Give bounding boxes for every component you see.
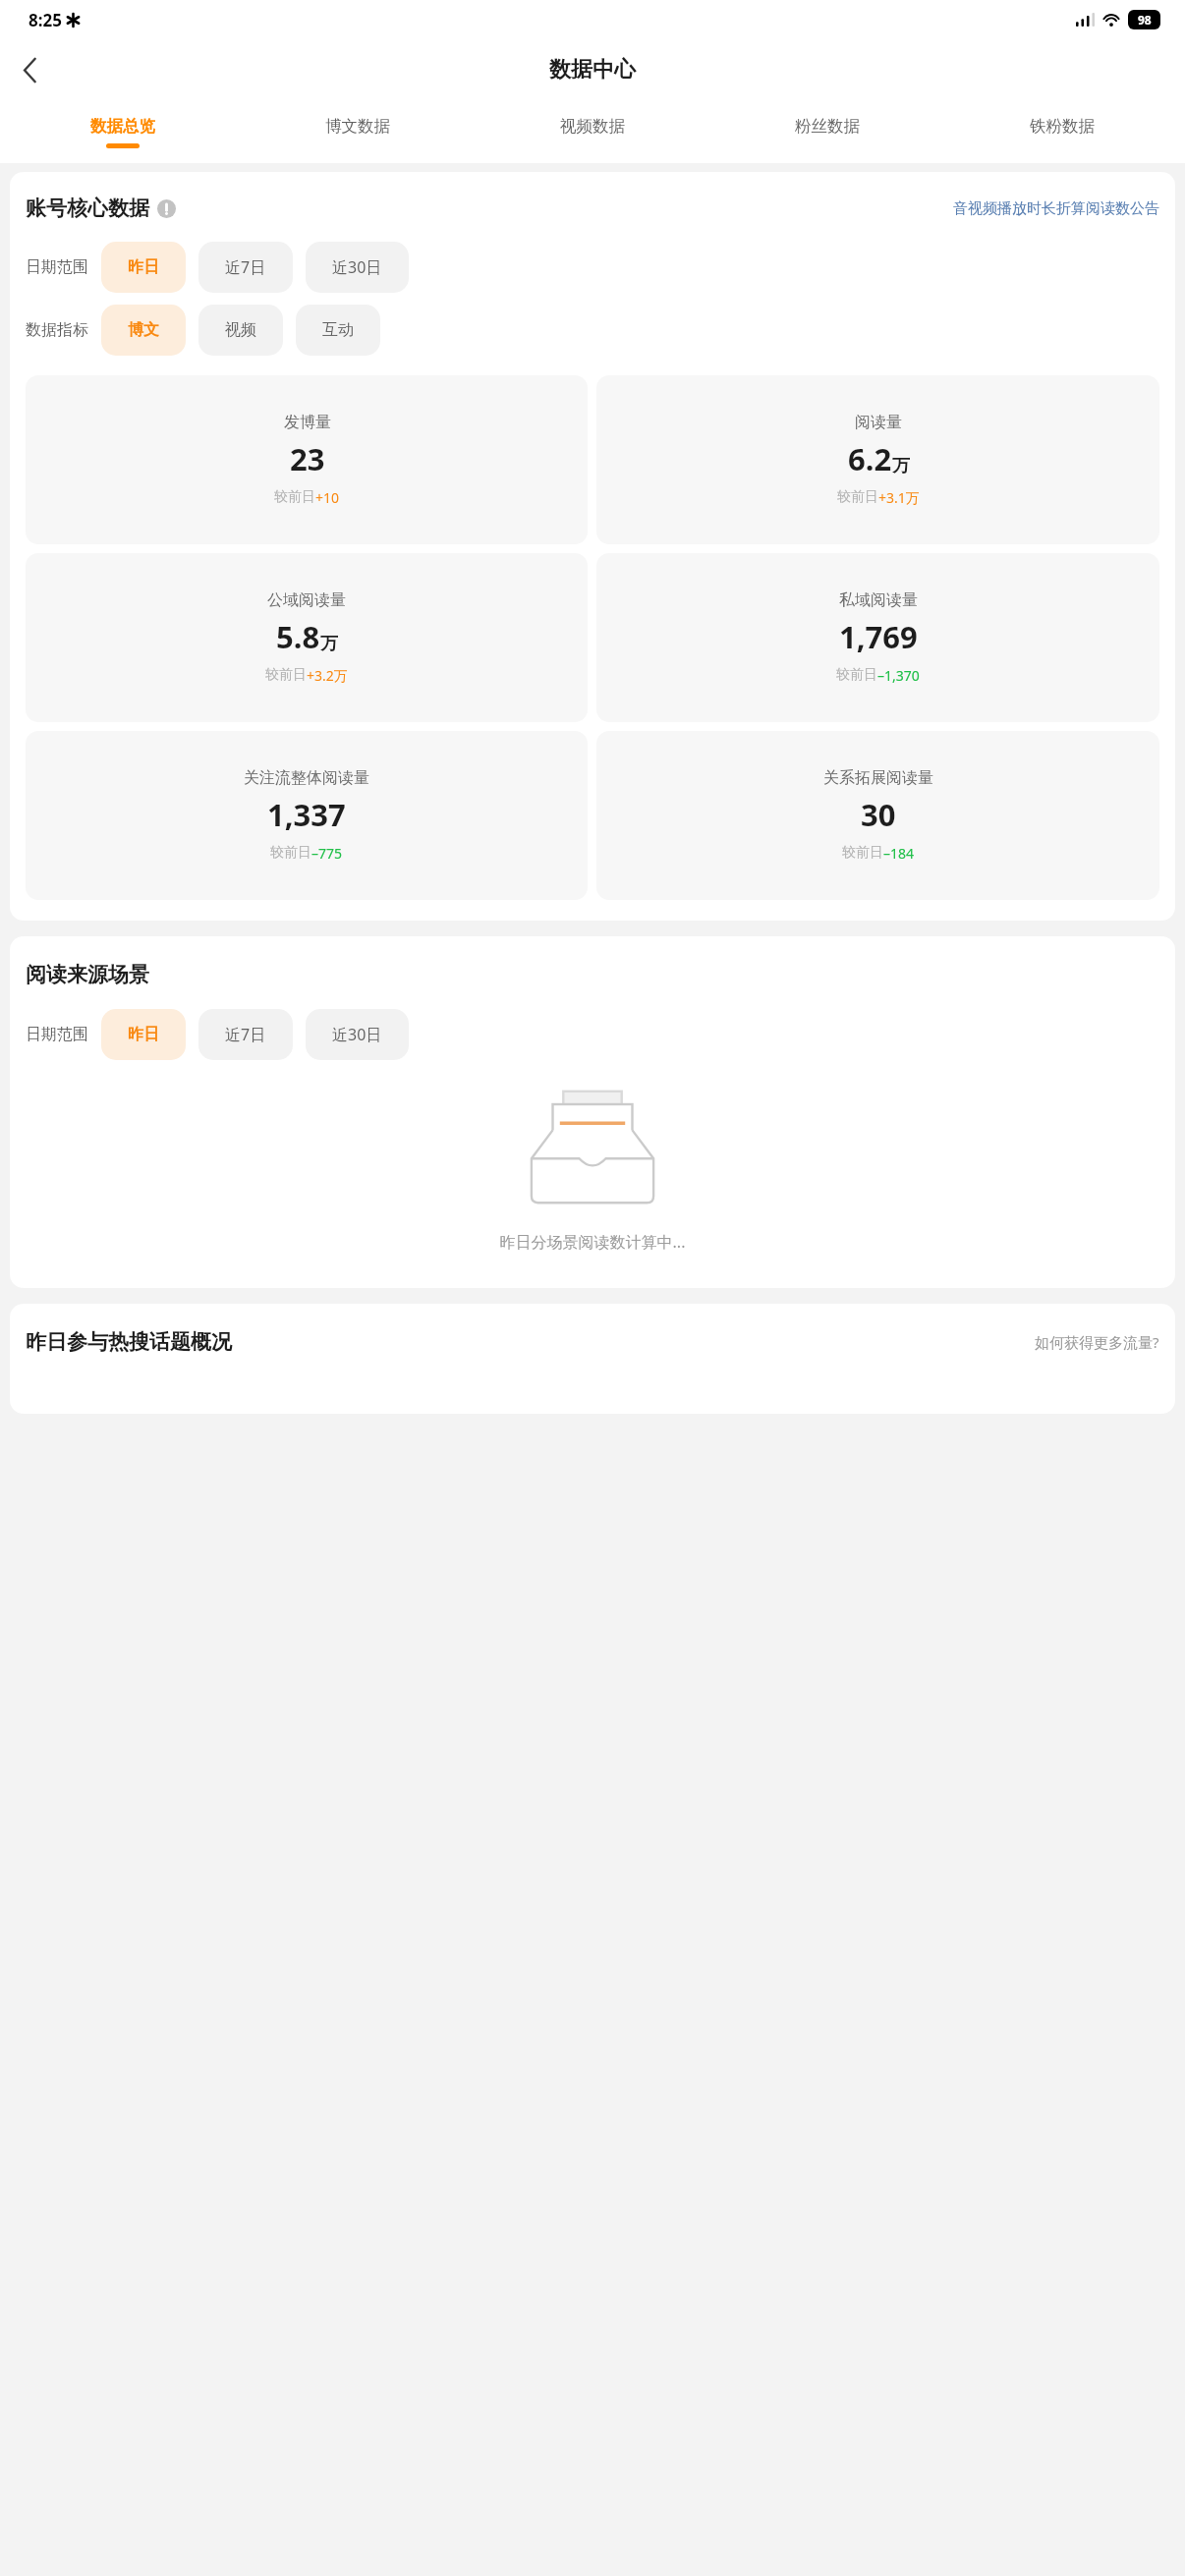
- staticText: 关系拓展阅读量: [823, 768, 933, 788]
- staticText: 较前日: [270, 844, 311, 862]
- staticText: 博文: [128, 320, 159, 340]
- staticText: –775: [311, 844, 343, 863]
- button[interactable]: 数据总览: [6, 100, 240, 163]
- staticText: 98: [1138, 12, 1152, 28]
- button[interactable]: 视频: [198, 305, 283, 356]
- staticText: 阅读量: [855, 413, 902, 432]
- button[interactable]: 阅读量: [596, 375, 1159, 544]
- staticText: –1,370: [877, 666, 920, 685]
- staticText: 较前日: [274, 488, 315, 506]
- staticText: 近30日: [332, 1024, 382, 1045]
- button[interactable]: 近7日: [198, 242, 293, 293]
- staticText: 较前日: [842, 844, 883, 862]
- button[interactable]: Back: [6, 46, 53, 93]
- staticText: 互动: [322, 320, 354, 340]
- staticText: 较前日: [836, 666, 877, 684]
- staticText: 5.8: [276, 616, 320, 657]
- staticText: 昨日: [128, 1025, 159, 1044]
- staticText: 万: [320, 633, 338, 655]
- button[interactable]: 发博量: [26, 375, 588, 544]
- button[interactable]: 如何获得更多流量?: [1035, 1332, 1159, 1352]
- button[interactable]: 关注流整体阅读量: [26, 731, 588, 900]
- staticText: 铁粉数据: [1030, 116, 1095, 137]
- staticText: +3.1万: [878, 488, 920, 507]
- button[interactable]: 公域阅读量: [26, 553, 588, 722]
- button[interactable]: 账号核心数据: [26, 196, 176, 221]
- staticText: –184: [883, 844, 915, 863]
- staticText: 昨日: [128, 257, 159, 277]
- staticText: 视频: [225, 320, 256, 340]
- staticText: 发博量: [284, 413, 331, 432]
- staticText: 近7日: [225, 256, 266, 278]
- staticText: 日期范围: [26, 257, 88, 277]
- staticText: 音视频播放时长折算阅读数公告: [953, 199, 1159, 218]
- staticText: 私域阅读量: [839, 590, 918, 610]
- staticText: 8:25: [28, 9, 62, 31]
- button[interactable]: 博文数据: [240, 100, 475, 163]
- staticText: 账号核心数据: [26, 196, 149, 221]
- button[interactable]: 关系拓展阅读量: [596, 731, 1159, 900]
- staticText: 博文数据: [325, 116, 390, 137]
- button[interactable]: 私域阅读量: [596, 553, 1159, 722]
- staticText: 视频数据: [560, 116, 625, 137]
- staticText: +10: [315, 488, 340, 507]
- staticText: 昨日参与热搜话题概况: [26, 1329, 232, 1355]
- staticText: 昨日分场景阅读数计算中...: [26, 1231, 1159, 1253]
- staticText: 1,769: [839, 616, 918, 657]
- staticText: 较前日: [265, 666, 307, 684]
- button[interactable]: 近7日: [198, 1009, 293, 1060]
- staticText: 日期范围: [26, 1025, 88, 1044]
- staticText: 23: [290, 438, 325, 479]
- staticText: 30: [861, 794, 896, 835]
- button[interactable]: 音视频播放时长折算阅读数公告: [953, 199, 1159, 218]
- staticText: 关注流整体阅读量: [244, 768, 369, 788]
- staticText: +3.2万: [307, 666, 348, 685]
- button[interactable]: 昨日: [101, 242, 186, 293]
- staticText: 数据总览: [90, 116, 155, 137]
- button[interactable]: 博文: [101, 305, 186, 356]
- staticText: 如何获得更多流量?: [1035, 1332, 1159, 1352]
- staticText: 数据指标: [26, 320, 88, 340]
- staticText: 近30日: [332, 256, 382, 278]
- button[interactable]: 近30日: [306, 242, 409, 293]
- staticText: 近7日: [225, 1024, 266, 1045]
- staticText: 6.2: [848, 438, 892, 479]
- staticText: 公域阅读量: [267, 590, 346, 610]
- button[interactable]: 铁粉数据: [944, 100, 1179, 163]
- staticText: 阅读来源场景: [26, 962, 149, 987]
- staticText: 万: [892, 455, 910, 477]
- staticText: 较前日: [837, 488, 878, 506]
- button[interactable]: 昨日: [101, 1009, 186, 1060]
- button[interactable]: 互动: [296, 305, 380, 356]
- button[interactable]: 视频数据: [475, 100, 709, 163]
- staticText: 粉丝数据: [795, 116, 860, 137]
- staticText: 1,337: [267, 794, 346, 835]
- staticText: 数据中心: [549, 56, 636, 84]
- button[interactable]: 粉丝数据: [709, 100, 944, 163]
- button[interactable]: 近30日: [306, 1009, 409, 1060]
